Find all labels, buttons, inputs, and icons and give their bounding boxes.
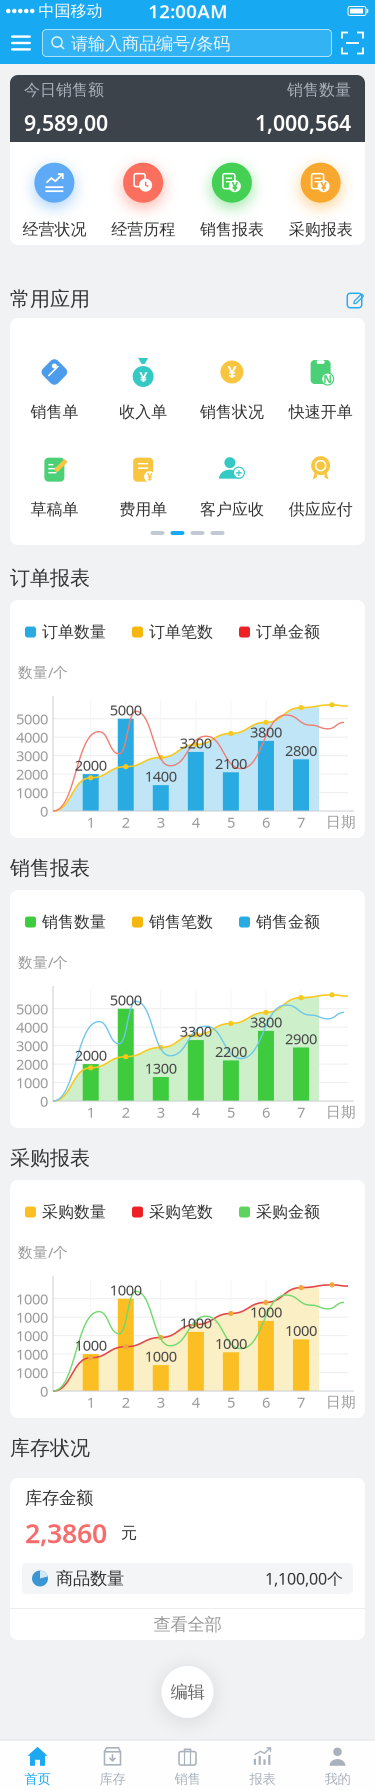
button[interactable]: 请输入商品编号/条码 xyxy=(42,29,332,57)
staticText: 1000 xyxy=(75,1335,107,1355)
button[interactable]: 编辑 xyxy=(161,1666,213,1718)
staticText: 我的 xyxy=(324,1771,350,1787)
staticText: 费用单 xyxy=(119,500,167,519)
staticText: 1000 xyxy=(16,1326,48,1345)
staticText: 1000 xyxy=(180,1313,212,1333)
staticText: N xyxy=(323,372,332,386)
staticText: ¥ xyxy=(139,367,147,386)
button[interactable]: ¥ xyxy=(187,148,276,239)
button[interactable] xyxy=(342,32,363,53)
staticText: 首页 xyxy=(24,1771,50,1787)
staticText: 4 xyxy=(192,812,200,832)
staticText: 请输入商品编号/条码 xyxy=(71,31,230,54)
staticText: 快速开单 xyxy=(289,402,353,422)
staticText: 4000 xyxy=(16,1017,48,1037)
staticText: ¥ xyxy=(227,361,236,383)
button[interactable]: 供应应付 xyxy=(276,452,365,519)
button[interactable]: + xyxy=(187,452,276,519)
button[interactable]: 经营历程 xyxy=(99,148,188,239)
staticText: 2800 xyxy=(285,741,317,760)
staticText: 2000 xyxy=(75,755,107,775)
staticText: 客户应收 xyxy=(200,500,264,519)
staticText: 4000 xyxy=(16,727,48,747)
staticText: 1000 xyxy=(215,1333,247,1353)
button[interactable] xyxy=(347,290,365,308)
button[interactable]: ¥ xyxy=(99,452,188,519)
staticText: 1 xyxy=(87,1392,95,1412)
button[interactable]: 首页 xyxy=(0,1740,75,1790)
staticText: 7 xyxy=(297,1392,305,1412)
staticText: ¥ xyxy=(147,470,153,484)
staticText: 数量/个 xyxy=(18,1242,68,1262)
button[interactable]: 经营状况 xyxy=(10,148,99,239)
staticText: 7 xyxy=(297,812,305,832)
button[interactable]: 我的 xyxy=(300,1740,375,1790)
staticText: 1 xyxy=(87,1102,95,1122)
staticText: 销售数量 xyxy=(287,80,351,100)
staticText: 日期 xyxy=(326,813,356,831)
staticText: 2 xyxy=(122,1392,130,1412)
staticText: 采购笔数 xyxy=(149,1202,213,1222)
staticText: ¥ xyxy=(231,178,238,194)
staticText: 3800 xyxy=(250,722,282,742)
staticText: 收入单 xyxy=(119,402,167,422)
staticText: 销售笔数 xyxy=(149,912,213,932)
staticText: 采购金额 xyxy=(256,1202,320,1222)
staticText: 采购报表 xyxy=(10,1146,90,1170)
staticText: 3 xyxy=(157,1102,165,1122)
staticText: 3200 xyxy=(180,733,212,753)
staticText: 5000 xyxy=(110,990,142,1009)
staticText: 1000 xyxy=(16,1307,48,1327)
staticText: 数量/个 xyxy=(18,662,68,682)
staticText: 经营状况 xyxy=(22,220,86,239)
staticText: 日期 xyxy=(326,1393,356,1411)
button[interactable]: 销售单 xyxy=(10,354,99,422)
staticText: 7 xyxy=(297,1102,305,1122)
staticText: 订单报表 xyxy=(10,566,90,590)
staticText: 库存金额 xyxy=(25,1487,93,1509)
staticText: 供应应付 xyxy=(289,500,353,519)
button[interactable]: 草稿单 xyxy=(10,452,99,519)
button[interactable] xyxy=(10,33,32,53)
button[interactable]: 库存 xyxy=(75,1740,150,1790)
button[interactable]: 销售 xyxy=(150,1740,225,1790)
staticText: 2900 xyxy=(285,1029,317,1048)
button[interactable]: 查看全部 xyxy=(10,1609,365,1640)
staticText: 订单笔数 xyxy=(149,622,213,642)
button[interactable]: N xyxy=(276,354,365,422)
staticText: 1000 xyxy=(110,1280,142,1299)
staticText: 元 xyxy=(121,1523,137,1543)
staticText: 1,000,564 xyxy=(255,109,351,137)
staticText: 订单数量 xyxy=(42,622,106,642)
staticText: 12:00AM xyxy=(148,0,227,23)
staticText: 1400 xyxy=(145,766,177,786)
button[interactable]: 报表 xyxy=(225,1740,300,1790)
staticText: 0 xyxy=(40,801,48,821)
staticText: 今日销售额 xyxy=(24,80,104,100)
staticText: 经营历程 xyxy=(111,220,175,239)
staticText: 6 xyxy=(262,1392,270,1412)
staticText: 草稿单 xyxy=(30,500,78,519)
staticText: 数量/个 xyxy=(18,952,68,972)
button[interactable]: ¥ xyxy=(276,148,365,239)
button[interactable]: ¥ xyxy=(187,354,276,422)
staticText: 2200 xyxy=(215,1042,247,1061)
staticText: 0 xyxy=(40,1381,48,1401)
staticText: 2100 xyxy=(215,753,247,773)
staticText: 5000 xyxy=(16,709,48,728)
staticText: 采购报表 xyxy=(289,220,353,239)
staticText: 9,589,00 xyxy=(24,109,108,137)
staticText: 2 xyxy=(122,812,130,832)
staticText: 销售状况 xyxy=(200,402,264,422)
staticText: 库存 xyxy=(99,1771,125,1787)
staticText: ¥ xyxy=(320,178,327,194)
staticText: 6 xyxy=(262,1102,270,1122)
staticText: 日期 xyxy=(326,1103,356,1121)
staticText: 2000 xyxy=(16,764,48,784)
staticText: 销售报表 xyxy=(200,220,264,239)
button[interactable]: 商品数量 xyxy=(22,1563,353,1594)
button[interactable]: ¥ xyxy=(99,354,188,422)
staticText: 5 xyxy=(227,1102,235,1122)
staticText: 2,3860 xyxy=(25,1515,107,1551)
staticText: 5000 xyxy=(110,700,142,719)
